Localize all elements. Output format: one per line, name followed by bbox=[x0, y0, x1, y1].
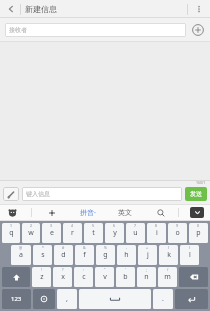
staticText: 7 bbox=[134, 223, 137, 228]
button[interactable]: i bbox=[147, 223, 166, 243]
staticText: 2 bbox=[30, 223, 33, 228]
staticText: o bbox=[175, 228, 180, 238]
staticText: ; bbox=[146, 267, 147, 272]
staticText: @ bbox=[19, 245, 23, 250]
button[interactable]: a bbox=[11, 245, 31, 265]
button[interactable]: v bbox=[95, 267, 114, 287]
staticText: s bbox=[41, 250, 45, 260]
button[interactable]: 键入信息 bbox=[22, 187, 182, 201]
staticText: ? bbox=[62, 267, 64, 272]
staticText: 123 bbox=[11, 295, 22, 303]
staticText: . bbox=[162, 294, 164, 304]
staticText: p bbox=[196, 228, 201, 238]
staticText: 8 bbox=[155, 223, 158, 228]
staticText: % bbox=[104, 245, 107, 250]
staticText: m bbox=[164, 272, 171, 282]
staticText: & bbox=[83, 245, 86, 250]
staticText: 新建信息 bbox=[25, 4, 57, 14]
button[interactable]: Numbers bbox=[2, 289, 31, 309]
staticText: j bbox=[147, 250, 149, 260]
staticText: w bbox=[28, 228, 34, 238]
staticText: - bbox=[126, 245, 128, 250]
button[interactable]: g bbox=[96, 245, 115, 265]
button[interactable]: c bbox=[74, 267, 93, 287]
button[interactable]: More options bbox=[191, 1, 207, 17]
button[interactable]: Enter bbox=[175, 289, 208, 309]
staticText: 3 bbox=[50, 223, 53, 228]
staticText: g bbox=[103, 250, 108, 260]
button[interactable]: 接收者 bbox=[5, 23, 186, 37]
button[interactable]: f bbox=[75, 245, 94, 265]
button[interactable]: s bbox=[33, 245, 52, 265]
staticText: e bbox=[50, 228, 54, 238]
staticText: 5 bbox=[92, 223, 95, 228]
button[interactable]: t bbox=[84, 223, 103, 243]
button[interactable]: p bbox=[189, 223, 208, 243]
staticText: 6 bbox=[113, 223, 116, 228]
button[interactable]: . bbox=[153, 289, 173, 309]
button[interactable]: h bbox=[117, 245, 136, 265]
staticText: d bbox=[61, 250, 66, 260]
button[interactable]: Emoji bbox=[6, 206, 19, 219]
staticText: 英文 bbox=[118, 208, 132, 217]
button[interactable]: o bbox=[168, 223, 187, 243]
button[interactable]: q bbox=[2, 223, 20, 243]
staticText: 1 bbox=[10, 223, 13, 228]
staticText: u bbox=[133, 228, 138, 238]
button[interactable]: l bbox=[180, 245, 199, 265]
button[interactable]: Back bbox=[3, 1, 19, 17]
button[interactable]: z bbox=[32, 267, 51, 287]
button[interactable]: m bbox=[158, 267, 177, 287]
button[interactable]: b bbox=[116, 267, 135, 287]
staticText: 发送 bbox=[190, 190, 202, 198]
button[interactable]: 发送 bbox=[185, 187, 207, 201]
staticText: r bbox=[71, 228, 74, 238]
staticText: # bbox=[62, 245, 65, 250]
staticText: * bbox=[42, 245, 44, 250]
staticText: 9 bbox=[176, 223, 179, 228]
staticText: ( bbox=[168, 245, 170, 250]
button[interactable]: , bbox=[57, 289, 77, 309]
staticText: 4 bbox=[71, 223, 74, 228]
button[interactable]: Hide keyboard bbox=[190, 207, 204, 218]
button[interactable]: r bbox=[63, 223, 82, 243]
button[interactable]: Attach bbox=[3, 187, 19, 201]
staticText: " bbox=[104, 267, 106, 272]
staticText: b bbox=[123, 272, 128, 282]
staticText: 接收者 bbox=[9, 26, 27, 34]
staticText: y bbox=[113, 228, 117, 238]
staticText: , bbox=[66, 294, 68, 304]
button[interactable]: w bbox=[22, 223, 40, 243]
staticText: q bbox=[9, 228, 14, 238]
staticText: f bbox=[83, 250, 86, 260]
staticText: 160/1 bbox=[196, 180, 206, 185]
staticText: n bbox=[144, 272, 149, 282]
button[interactable]: e bbox=[42, 223, 61, 243]
button[interactable]: x bbox=[53, 267, 72, 287]
button[interactable]: 英文 bbox=[118, 208, 132, 217]
staticText: v bbox=[103, 272, 107, 282]
button[interactable]: d bbox=[54, 245, 73, 265]
staticText: 拼音· bbox=[80, 208, 96, 218]
button[interactable]: Add contact bbox=[191, 23, 205, 37]
staticText: ' bbox=[125, 267, 126, 272]
staticText: t bbox=[92, 228, 95, 238]
button[interactable]: k bbox=[159, 245, 178, 265]
button[interactable]: Move cursor bbox=[45, 206, 58, 219]
staticText: k bbox=[167, 250, 171, 260]
staticText: ) bbox=[189, 245, 191, 250]
button[interactable]: u bbox=[126, 223, 145, 243]
button[interactable]: y bbox=[105, 223, 124, 243]
button[interactable]: Search bbox=[154, 206, 167, 219]
button[interactable]: n bbox=[137, 267, 156, 287]
staticText: h bbox=[124, 250, 129, 260]
staticText: z bbox=[40, 272, 44, 282]
button[interactable]: Backspace bbox=[179, 267, 208, 287]
button[interactable]: Shift bbox=[2, 267, 30, 287]
button[interactable]: Space bbox=[79, 289, 151, 309]
button[interactable]: 拼音· bbox=[80, 208, 96, 218]
staticText: 0 bbox=[197, 223, 200, 228]
button[interactable]: j bbox=[138, 245, 157, 265]
staticText: a bbox=[19, 250, 23, 260]
button[interactable]: Emoji keyboard bbox=[33, 289, 55, 309]
